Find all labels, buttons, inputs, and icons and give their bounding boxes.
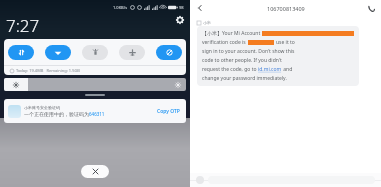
staticText: 1.0KB/s	[113, 5, 128, 10]
staticText: 【小米】Your Mi Account	[202, 30, 261, 37]
button[interactable]: Quick setting toggle	[45, 45, 71, 60]
staticText: 小米账号安全验证码	[24, 105, 60, 110]
staticText: sign in to your account. Don't show this	[202, 48, 295, 55]
staticText: 106700813409	[267, 5, 305, 12]
button[interactable]: Back	[195, 3, 205, 13]
button[interactable]: 【小米】Your Mi Account	[202, 30, 354, 82]
button[interactable]: Add attachment	[190, 173, 381, 187]
staticText: change your password immediately.	[202, 75, 287, 82]
staticText: 646311	[89, 111, 105, 117]
staticText: Today: 19.4MB Remaining: 1.5GB	[16, 68, 80, 73]
staticText: 98	[179, 5, 184, 10]
button[interactable]: Clear all notifications	[81, 165, 109, 178]
staticText: request the code, go to	[202, 66, 258, 73]
button[interactable]: Quick setting toggle	[119, 45, 145, 60]
staticText: 7:27	[6, 14, 40, 36]
button[interactable]: Settings	[175, 15, 185, 25]
button[interactable]: Quick setting toggle	[156, 45, 182, 60]
staticText: Copy OTP	[157, 108, 180, 115]
staticText: code to other people. If you didn't	[202, 57, 282, 64]
staticText: use it to	[276, 39, 295, 46]
staticText: and	[282, 66, 293, 73]
staticText: 一个正在使用中的，验证码为	[24, 111, 89, 117]
staticText: verification code is	[202, 39, 246, 46]
button[interactable]: Quick setting toggle	[82, 45, 108, 60]
staticText: 小米	[203, 20, 211, 25]
button[interactable]: 小米账号安全验证码	[8, 99, 182, 123]
button[interactable]: Quick setting toggle	[8, 45, 34, 60]
button[interactable]: Copy OTP	[157, 108, 180, 115]
button[interactable]: id.mi.com	[258, 66, 282, 73]
button[interactable]: Call	[366, 3, 376, 13]
button[interactable]: Add attachment	[196, 176, 204, 184]
button[interactable]: Brightness	[4, 78, 186, 91]
